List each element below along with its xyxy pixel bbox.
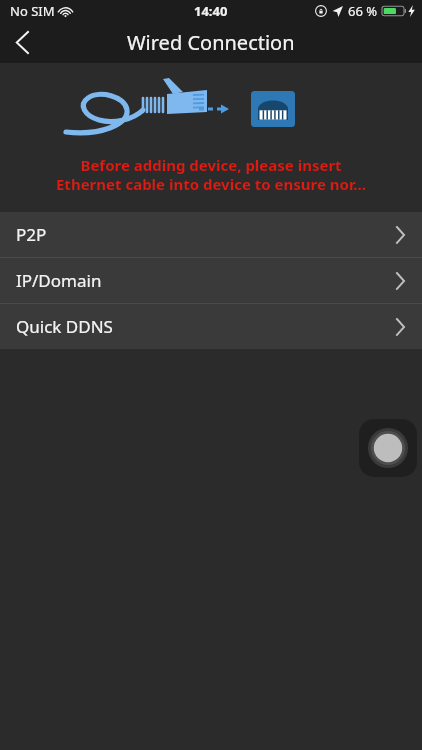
staticText: Quick DDNS bbox=[16, 315, 113, 338]
button[interactable]: Quick DDNS bbox=[0, 304, 422, 349]
staticText: Before adding device, please insert Ethe… bbox=[24, 155, 398, 194]
staticText: 66 % bbox=[348, 2, 378, 20]
staticText: Wired Connection bbox=[127, 29, 295, 56]
staticText: IP/Domain bbox=[16, 269, 102, 292]
staticText: P2P bbox=[16, 223, 47, 246]
button[interactable]: P2P bbox=[0, 212, 422, 257]
button[interactable]: Back bbox=[0, 22, 44, 63]
button[interactable]: AssistiveTouch bbox=[359, 419, 417, 477]
staticText: No SIM bbox=[10, 2, 55, 20]
button[interactable]: IP/Domain bbox=[0, 258, 422, 303]
staticText: 14:40 bbox=[194, 2, 228, 20]
